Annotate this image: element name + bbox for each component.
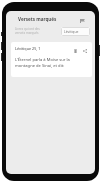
button[interactable]: Lévitique — [61, 27, 90, 36]
staticText: Livres qui ont des versets marqués — [15, 27, 40, 35]
staticText: Versets marqués — [18, 16, 57, 22]
button[interactable]: Supprimer — [71, 46, 80, 55]
staticText: Lévitique 25, 1 — [15, 46, 41, 51]
button[interactable]: Quitter — [77, 15, 88, 26]
staticText: Lévitique — [64, 29, 79, 34]
button[interactable]: Lévitique 25, 1 — [11, 42, 92, 77]
staticText: L'Éternel parla à Moïse sur la montagne … — [15, 57, 70, 69]
button[interactable]: Partager — [80, 46, 89, 55]
